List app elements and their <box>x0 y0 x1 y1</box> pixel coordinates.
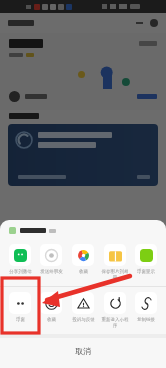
button[interactable]: 投诉与反馈 <box>68 290 98 325</box>
button[interactable] <box>8 124 158 186</box>
staticText: 浮窗显示 <box>137 269 155 275</box>
button[interactable]: 重新进入小程序 <box>100 290 130 331</box>
button[interactable]: 浮窗显示 <box>131 242 161 277</box>
button[interactable]: 取消 <box>0 338 166 364</box>
staticText: 收藏 <box>47 317 56 323</box>
button[interactable]: 发送给朋友 <box>36 242 66 277</box>
staticText: 浮窗 <box>16 317 25 323</box>
staticText: 收藏 <box>79 269 88 275</box>
staticText: 取消 <box>75 346 91 356</box>
staticText: 分享到微信 <box>9 269 32 275</box>
button[interactable]: 收藏 <box>36 290 66 325</box>
staticText: 重新进入小程序 <box>100 317 130 329</box>
button[interactable]: 复制链接 <box>131 290 161 325</box>
staticText: 保存图片到相册 <box>100 269 130 281</box>
button[interactable]: 收藏 <box>68 242 98 277</box>
button[interactable]: 浮窗 <box>5 290 35 325</box>
button[interactable]: 保存图片到相册 <box>100 242 130 283</box>
staticText: 复制链接 <box>137 317 155 323</box>
staticText: 投诉与反馈 <box>72 317 95 323</box>
button[interactable]: 分享到微信 <box>5 242 35 277</box>
staticText: 发送给朋友 <box>40 269 63 275</box>
